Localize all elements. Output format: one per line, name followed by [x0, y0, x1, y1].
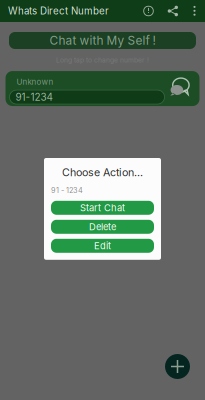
staticText: Start Chat [80, 202, 125, 213]
button[interactable]: Chat with My Self ! [9, 32, 196, 49]
button[interactable]: More options [193, 5, 196, 16]
button[interactable]: Start Chat [51, 201, 154, 215]
staticText: Long tap to change number ! [56, 56, 149, 64]
button[interactable]: Delete [51, 220, 154, 234]
button[interactable]: Share [167, 5, 179, 17]
button[interactable]: Unknown [5, 71, 199, 106]
staticText: Edit [94, 240, 111, 251]
button[interactable]: Edit [51, 239, 154, 253]
staticText: Delete [89, 221, 116, 232]
staticText: Choose Action... [62, 166, 143, 179]
staticText: 91 - 1234 [51, 186, 83, 195]
staticText: Unknown [16, 77, 53, 87]
staticText: Whats Direct Number [8, 5, 109, 17]
staticText: Chat with My Self ! [49, 33, 155, 48]
button[interactable]: Info [143, 5, 154, 16]
staticText: 91-1234 [15, 91, 52, 103]
button[interactable]: Add number [165, 354, 190, 379]
